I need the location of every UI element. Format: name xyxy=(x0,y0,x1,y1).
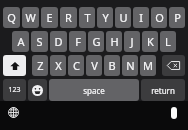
staticText: L xyxy=(165,34,171,49)
staticText: U xyxy=(119,10,128,25)
staticText: R xyxy=(65,10,72,25)
staticText: T xyxy=(84,10,91,25)
staticText: P xyxy=(174,10,181,25)
button[interactable]: P xyxy=(169,7,185,28)
staticText: C xyxy=(73,58,80,73)
button[interactable]: Emoji keyboard xyxy=(28,79,47,101)
button[interactable]: Dictation xyxy=(171,107,177,119)
button[interactable]: U xyxy=(115,7,131,28)
button[interactable]: return xyxy=(141,79,185,101)
button[interactable]: G xyxy=(88,31,104,52)
staticText: M xyxy=(143,58,153,73)
staticText: I xyxy=(139,10,143,25)
button[interactable]: N xyxy=(122,55,138,76)
button[interactable]: A xyxy=(12,31,29,52)
staticText: 123 xyxy=(8,85,21,95)
button[interactable]: F xyxy=(69,31,86,52)
button[interactable]: Switch keyboard language xyxy=(5,104,21,120)
staticText: return xyxy=(151,85,175,96)
button[interactable]: Y xyxy=(97,7,113,28)
staticText: O xyxy=(155,10,164,25)
button[interactable]: L xyxy=(160,31,176,52)
button[interactable]: 123 xyxy=(3,79,26,101)
staticText: D xyxy=(54,34,63,49)
button[interactable]: T xyxy=(79,7,95,28)
staticText: Z xyxy=(37,58,44,73)
staticText: N xyxy=(126,58,135,73)
button[interactable]: M xyxy=(140,55,156,76)
button[interactable]: H xyxy=(106,31,122,52)
staticText: F xyxy=(75,34,81,49)
button[interactable]: Z xyxy=(32,55,48,76)
staticText: A xyxy=(17,34,25,49)
staticText: Y xyxy=(102,10,109,25)
button[interactable]: Shift xyxy=(3,55,26,76)
staticText: X xyxy=(55,58,62,73)
button[interactable]: R xyxy=(60,7,77,28)
button[interactable]: J xyxy=(124,31,140,52)
button[interactable]: K xyxy=(142,31,158,52)
button[interactable]: Q xyxy=(3,7,20,28)
button[interactable]: E xyxy=(41,7,58,28)
staticText: Q xyxy=(7,10,16,25)
staticText: G xyxy=(92,34,101,49)
staticText: V xyxy=(91,58,98,73)
staticText: S xyxy=(36,34,43,49)
staticText: K xyxy=(147,34,154,49)
button[interactable]: Backspace xyxy=(162,55,185,76)
staticText: W xyxy=(25,10,36,25)
staticText: J xyxy=(130,34,134,49)
staticText: B xyxy=(108,58,116,73)
button[interactable]: V xyxy=(86,55,102,76)
staticText: space xyxy=(83,85,105,96)
button[interactable]: X xyxy=(50,55,66,76)
button[interactable]: O xyxy=(151,7,167,28)
staticText: H xyxy=(110,34,119,49)
staticText: E xyxy=(46,10,53,25)
button[interactable]: D xyxy=(50,31,67,52)
button[interactable]: B xyxy=(104,55,120,76)
button[interactable]: W xyxy=(22,7,39,28)
button[interactable]: C xyxy=(68,55,84,76)
button[interactable]: I xyxy=(133,7,149,28)
button[interactable]: space xyxy=(49,79,139,101)
button[interactable]: S xyxy=(31,31,48,52)
